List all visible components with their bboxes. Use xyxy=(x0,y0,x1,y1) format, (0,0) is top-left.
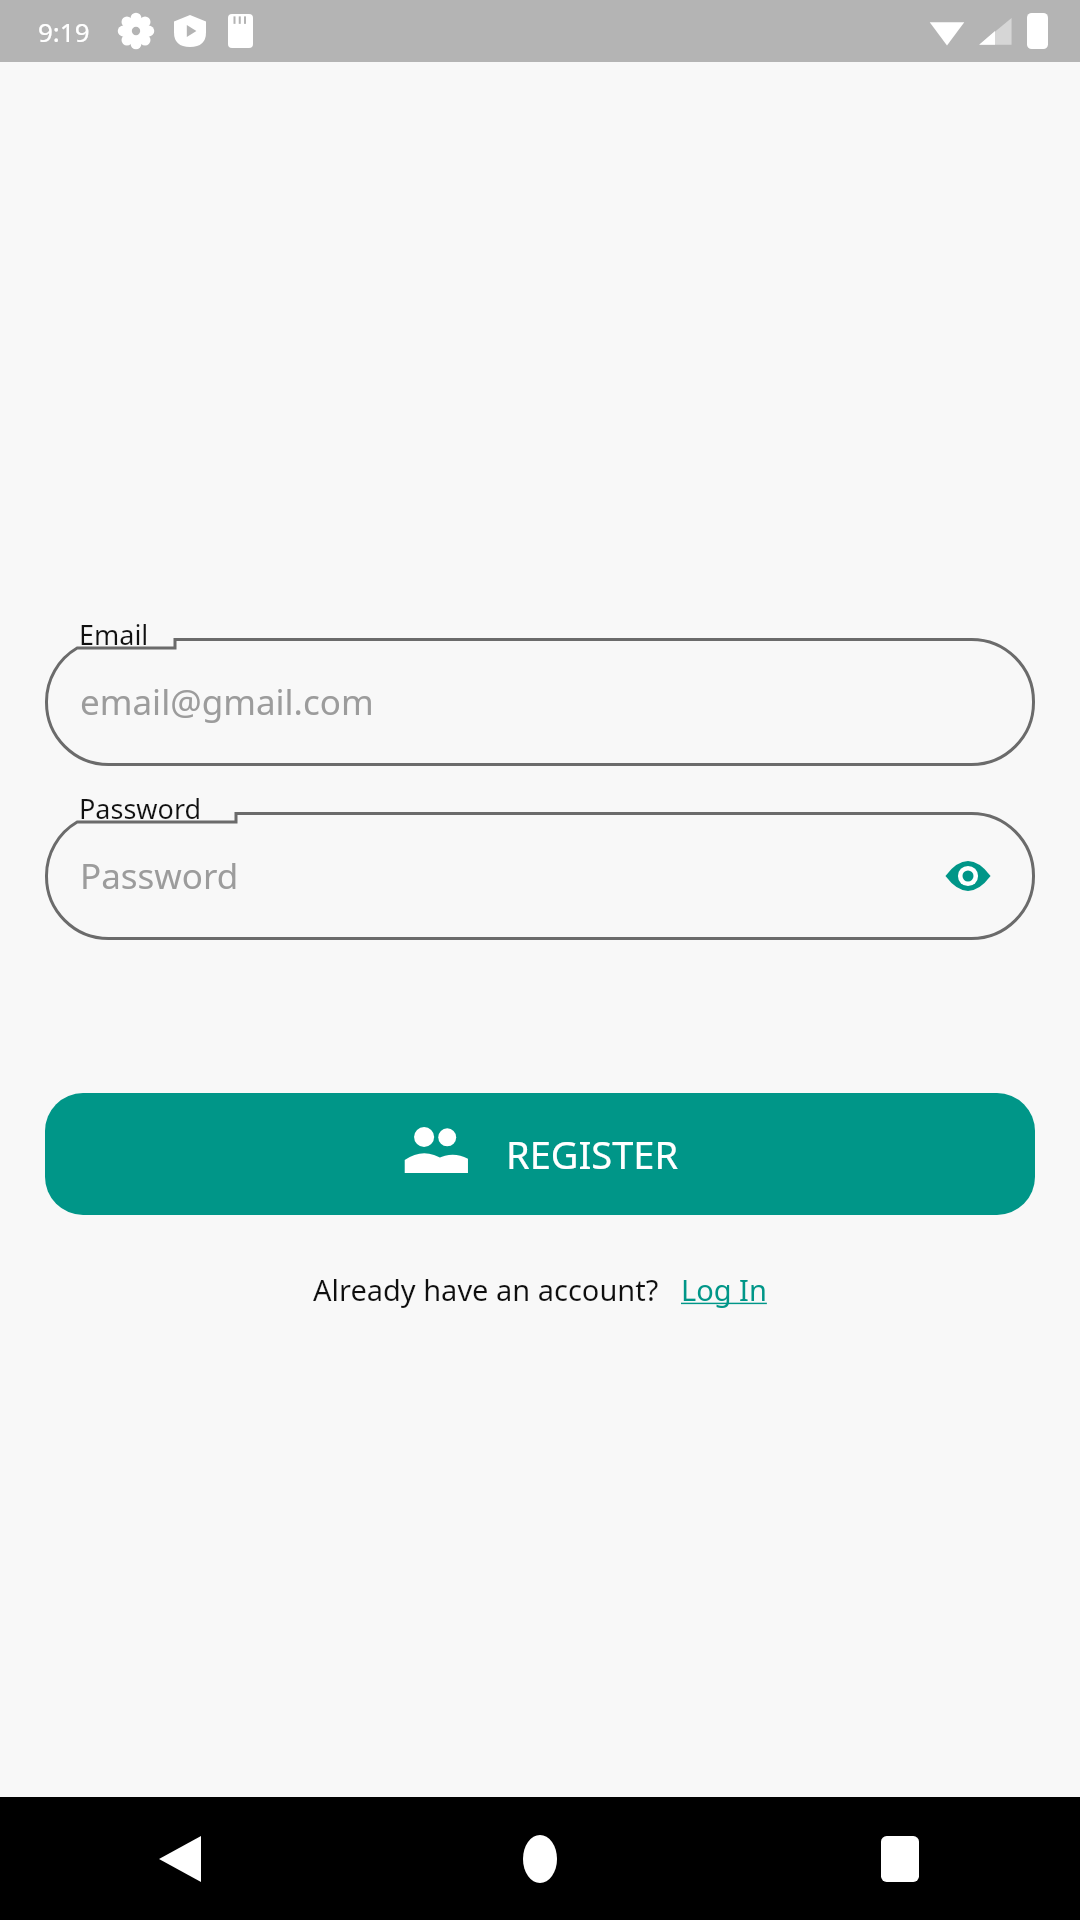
staticText: Password xyxy=(80,852,239,900)
button[interactable]: REGISTER xyxy=(45,1093,1035,1215)
button[interactable]: Back xyxy=(0,1797,360,1920)
staticText: Already have an account? xyxy=(313,1270,659,1309)
staticText: Log In xyxy=(681,1270,767,1309)
button[interactable]: Home xyxy=(360,1797,720,1920)
button[interactable]: Recent apps xyxy=(720,1797,1080,1920)
staticText: Password xyxy=(79,790,202,827)
button[interactable]: Password xyxy=(45,812,1035,940)
staticText: email@gmail.com xyxy=(80,678,374,726)
staticText: REGISTER xyxy=(506,1128,679,1180)
staticText: Email xyxy=(79,616,149,653)
button[interactable]: Log In xyxy=(681,1270,767,1309)
button[interactable]: Email xyxy=(45,638,1035,766)
staticText: 9:19 xyxy=(38,14,90,49)
button[interactable]: Toggle password visibility xyxy=(939,847,997,905)
